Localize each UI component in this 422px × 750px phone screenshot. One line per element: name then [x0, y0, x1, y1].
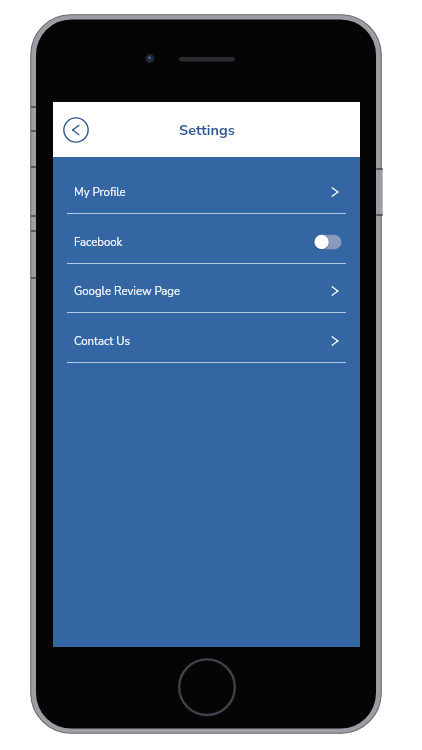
staticText: My Profile	[74, 184, 126, 200]
staticText: Facebook	[74, 234, 123, 250]
button[interactable]: Facebook toggle	[309, 231, 347, 253]
button[interactable]: My Profile	[53, 164, 360, 214]
staticText: Google Review Page	[74, 283, 181, 299]
button[interactable]: Back	[57, 111, 95, 149]
button[interactable]: Facebook	[53, 214, 360, 264]
staticText: Settings	[179, 120, 235, 140]
staticText: Contact Us	[74, 333, 131, 349]
button[interactable]: Contact Us	[53, 313, 360, 363]
button[interactable]: Google Review Page	[53, 263, 360, 313]
